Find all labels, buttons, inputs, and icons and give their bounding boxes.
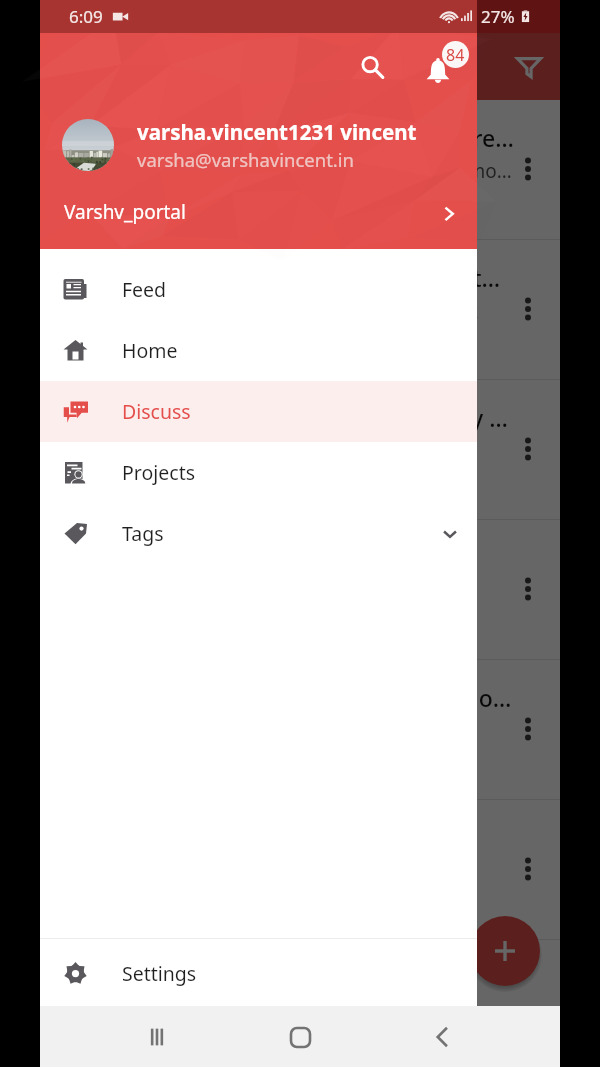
button[interactable]: More options xyxy=(515,436,541,462)
staticText: varsha.vincent1231 vincent xyxy=(137,118,417,146)
button[interactable]: Discuss xyxy=(40,381,477,442)
button[interactable]: Feed xyxy=(40,259,477,320)
button[interactable]: Settings xyxy=(40,943,477,1004)
staticText: varsha@varshavincent.in xyxy=(137,147,355,172)
button[interactable]: Back xyxy=(418,1012,468,1062)
staticText: Reminder about the upcoming weekly quiz xyxy=(64,402,516,433)
staticText: Notes for today morning class lecture xyxy=(64,542,478,573)
button[interactable]: Recents xyxy=(132,1012,182,1062)
staticText: Submit the lab assignment for the networ… xyxy=(64,262,516,293)
button[interactable]: Home xyxy=(40,320,477,381)
button[interactable]: Add xyxy=(470,916,540,986)
button[interactable]: Varshv_portal xyxy=(40,188,477,236)
staticText: Home xyxy=(122,337,178,364)
button[interactable]: More options xyxy=(515,156,541,182)
staticText: Assignment submission for computer netwo… xyxy=(64,298,478,324)
staticText: Tags xyxy=(122,520,164,547)
staticText: Please read this important notice from t… xyxy=(64,158,516,184)
button[interactable]: More options xyxy=(515,296,541,322)
staticText: 84 xyxy=(446,44,465,66)
button[interactable]: Notifications xyxy=(415,48,460,93)
staticText: Welcome to the brand new course here for… xyxy=(64,122,516,153)
staticText: 6:09 xyxy=(69,5,103,28)
staticText: Group project milestone due here for onc… xyxy=(64,682,516,713)
staticText: Discuss xyxy=(122,398,191,425)
staticText: Chapter three reading summary is posted xyxy=(64,438,437,464)
button[interactable]: Search xyxy=(350,45,394,89)
staticText: Projects xyxy=(122,459,196,486)
staticText: 27% xyxy=(481,5,515,28)
staticText: Settings xyxy=(122,960,197,987)
button[interactable]: More options xyxy=(515,716,541,742)
button[interactable]: More options xyxy=(515,576,541,602)
staticText: Feed xyxy=(122,276,167,303)
button[interactable]: Projects xyxy=(40,442,477,503)
button[interactable]: Tags xyxy=(40,503,477,564)
other: Filter xyxy=(516,54,542,80)
button[interactable]: More options xyxy=(515,856,541,882)
button[interactable]: Home xyxy=(275,1012,325,1062)
staticText: Varshv_portal xyxy=(64,199,186,225)
